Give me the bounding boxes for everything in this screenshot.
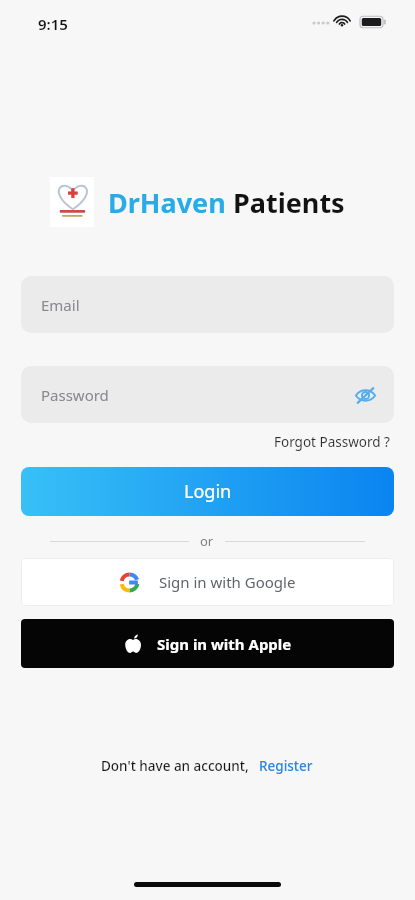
staticText: Register bbox=[259, 757, 313, 775]
button[interactable]: Sign in with Apple bbox=[21, 619, 394, 668]
button[interactable]: Login bbox=[21, 467, 394, 516]
staticText: Email bbox=[41, 295, 80, 315]
staticText: Patients bbox=[233, 184, 345, 221]
button[interactable]: Register bbox=[249, 757, 315, 775]
staticText: Forgot Password ? bbox=[274, 433, 390, 451]
button[interactable]: Sign in with Google bbox=[21, 558, 394, 606]
button[interactable]: Email bbox=[21, 276, 394, 333]
staticText: Sign in with Google bbox=[159, 572, 296, 592]
button[interactable]: Password bbox=[21, 366, 394, 423]
staticText: DrHaven bbox=[108, 184, 226, 221]
staticText: 9:15 bbox=[38, 14, 68, 34]
button[interactable]: Forgot Password ? bbox=[270, 429, 394, 455]
staticText: Login bbox=[184, 479, 232, 504]
staticText: Password bbox=[41, 385, 109, 405]
button[interactable]: Show password bbox=[348, 378, 382, 412]
staticText: Sign in with Apple bbox=[157, 634, 292, 654]
staticText: Don't have an account, bbox=[101, 757, 249, 775]
staticText: or bbox=[200, 532, 214, 550]
